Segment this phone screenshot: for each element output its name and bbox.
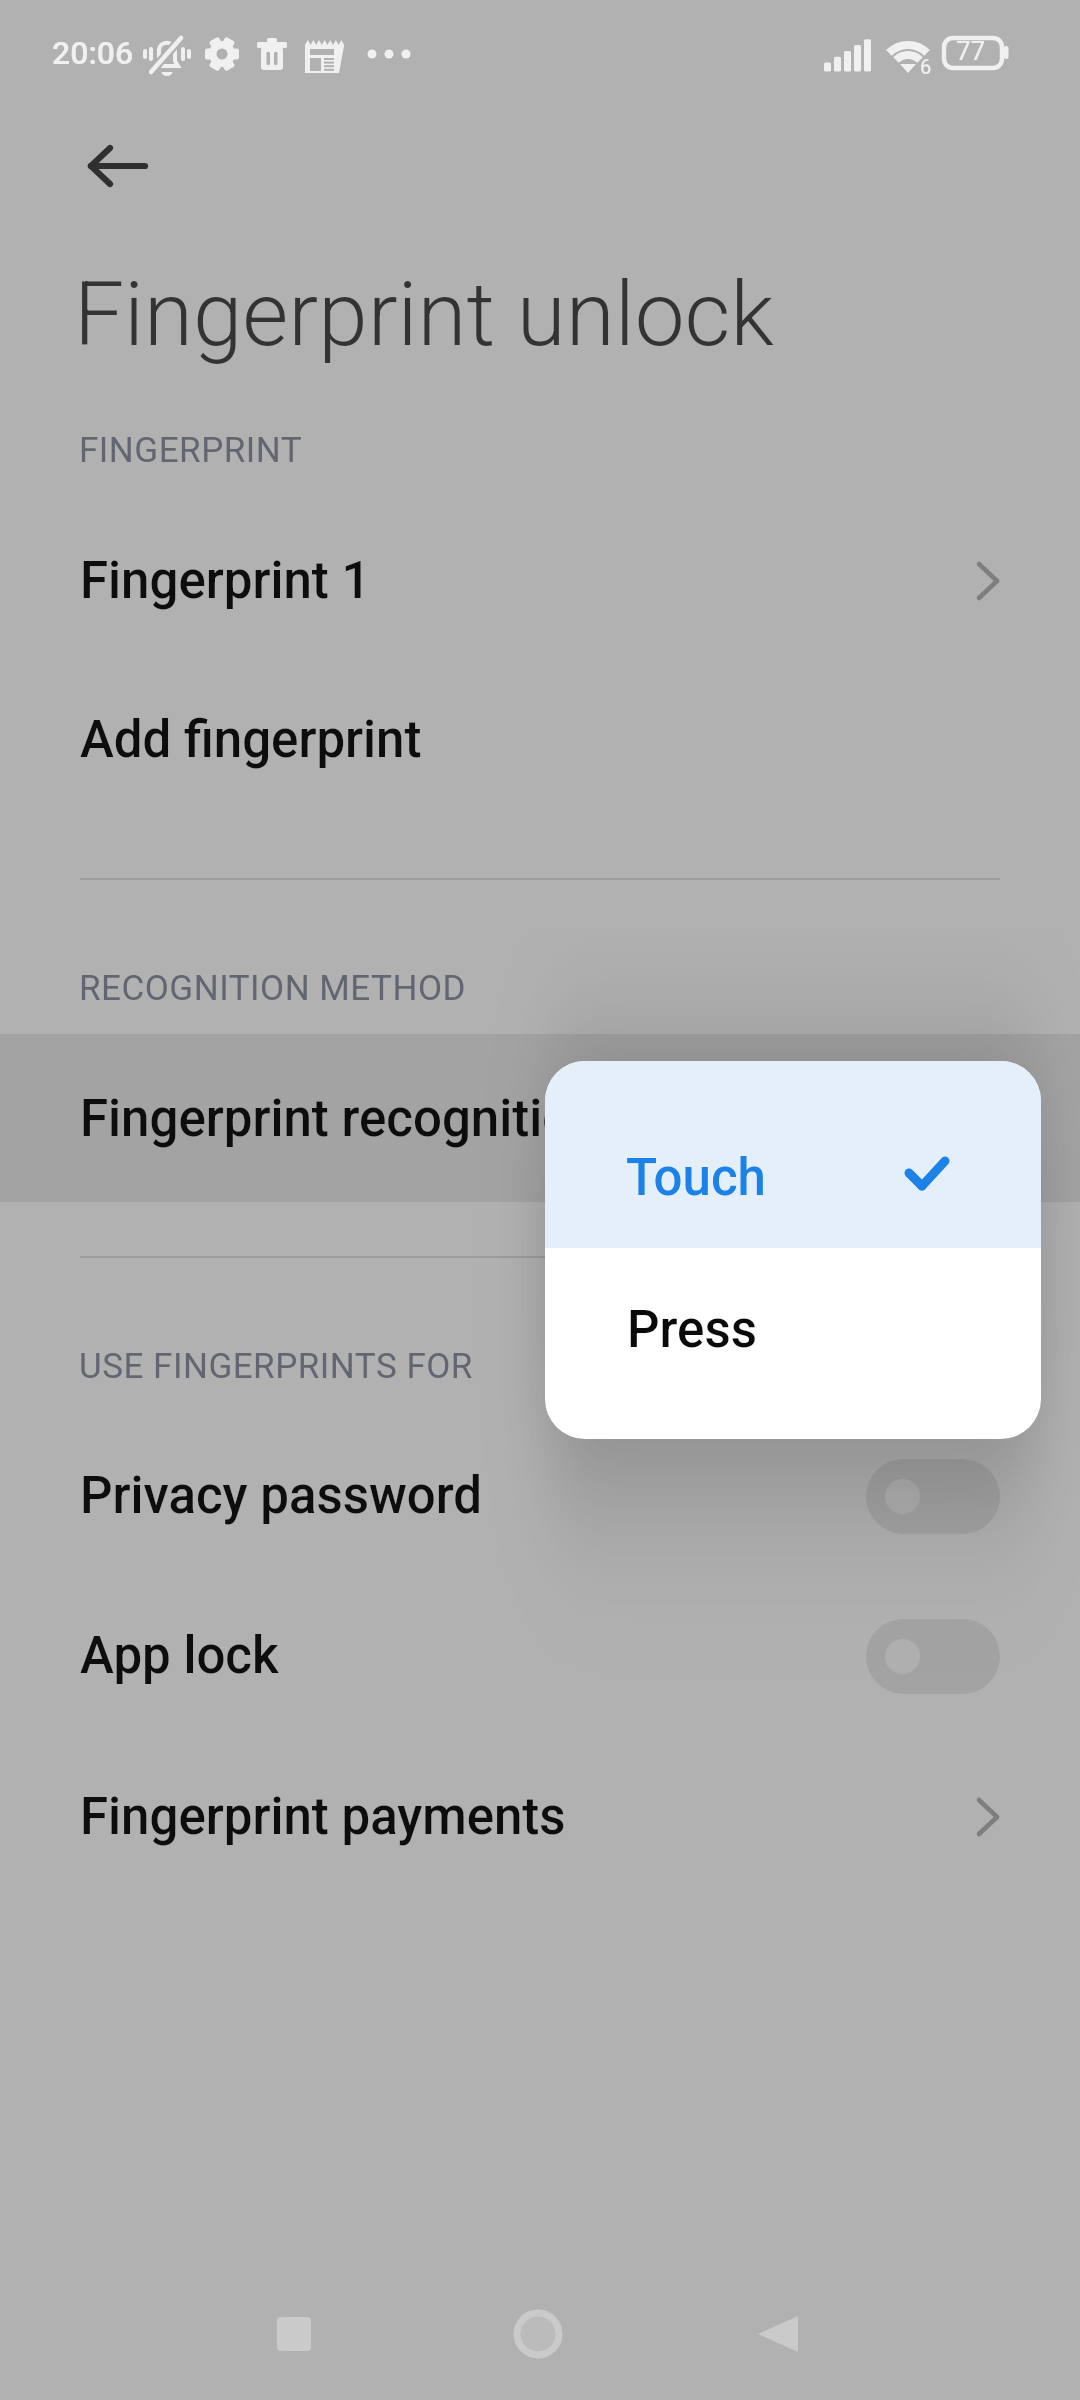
button[interactable]: Toggle Privacy password [866, 1459, 1000, 1534]
staticText: 20:06 [52, 34, 134, 72]
button[interactable]: Back [698, 2274, 858, 2394]
staticText: Fingerprint 1 [80, 551, 371, 611]
button[interactable]: Fingerprint payments [0, 1752, 1080, 1882]
staticText: 6 [920, 55, 932, 78]
button[interactable]: Toggle App lock [866, 1619, 1000, 1694]
staticText: Press [627, 1300, 757, 1360]
button[interactable]: Add fingerprint [0, 675, 1080, 805]
staticText: App lock [80, 1626, 279, 1686]
staticText: Fingerprint recognition method [80, 1089, 787, 1149]
button[interactable]: Fingerprint recognition method [0, 1034, 1080, 1202]
button[interactable]: Fingerprint 1 [0, 516, 1080, 646]
staticText: 77 [956, 36, 986, 66]
staticText: RECOGNITION METHOD [79, 968, 466, 1009]
button[interactable]: Press [545, 1248, 1041, 1439]
button[interactable]: App lock [0, 1591, 1080, 1721]
staticText: Fingerprint unlock [74, 262, 774, 366]
button[interactable]: Recent apps [214, 2274, 374, 2394]
button[interactable]: Back [67, 118, 163, 214]
staticText: Touch [626, 1148, 766, 1208]
button[interactable]: Privacy password [0, 1431, 1080, 1561]
staticText: Fingerprint payments [80, 1787, 566, 1847]
button[interactable]: Touch [545, 1061, 1041, 1248]
staticText: USE FINGERPRINTS FOR [79, 1346, 473, 1387]
staticText: Privacy password [80, 1466, 482, 1526]
staticText: FINGERPRINT [79, 430, 303, 471]
button[interactable]: Home [458, 2274, 618, 2394]
staticText: Add fingerprint [80, 710, 422, 770]
